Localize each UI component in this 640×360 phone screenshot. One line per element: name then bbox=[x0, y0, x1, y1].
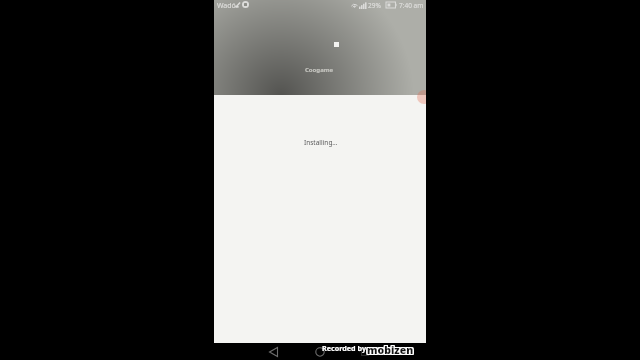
staticText: Recorded by bbox=[322, 343, 367, 353]
staticText: 7:40 am bbox=[399, 1, 424, 10]
button[interactable]: Recent apps bbox=[355, 343, 375, 360]
staticText: 29% bbox=[368, 1, 381, 10]
button[interactable]: Home bbox=[310, 343, 330, 360]
staticText: mobizen bbox=[367, 342, 414, 353]
button[interactable]: Back bbox=[263, 343, 283, 360]
staticText: Coogame bbox=[305, 66, 334, 74]
button[interactable]: Screen recorder bbox=[417, 90, 426, 104]
staticText: mobizen bbox=[368, 342, 415, 353]
staticText: mobizen bbox=[367, 344, 414, 355]
staticText: mobizen bbox=[367, 343, 414, 354]
staticText: Installing… bbox=[304, 138, 338, 147]
staticText: mobizen bbox=[368, 344, 415, 355]
staticText: Wadó bbox=[217, 1, 236, 11]
staticText: mobizen bbox=[368, 343, 415, 354]
staticText: mobizen bbox=[367, 343, 414, 354]
staticText: mobizen bbox=[366, 343, 413, 354]
staticText: mobizen bbox=[366, 342, 413, 353]
staticText: mobizen bbox=[366, 344, 413, 355]
